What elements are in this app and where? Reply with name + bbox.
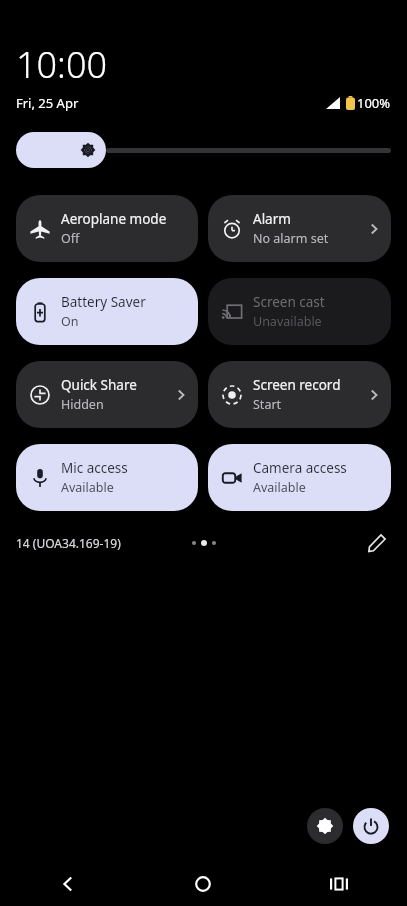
staticText: Unavailable <box>253 313 322 330</box>
staticText: Screen cast <box>253 293 325 311</box>
button[interactable]: Edit tiles <box>363 529 391 557</box>
staticText: Alarm <box>253 210 291 228</box>
staticText: Fri, 25 Apr <box>16 94 79 112</box>
button[interactable]: Camera access <box>208 444 391 511</box>
button[interactable]: Brightness <box>16 130 391 170</box>
staticText: Off <box>61 230 80 247</box>
button[interactable]: Power <box>353 808 389 844</box>
button[interactable]: Screen record <box>208 361 391 428</box>
staticText: Camera access <box>253 459 347 477</box>
staticText: Aeroplane mode <box>61 210 167 228</box>
staticText: Screen record <box>253 376 341 394</box>
staticText: Mic access <box>61 459 128 477</box>
button[interactable]: Mic access <box>16 444 198 511</box>
button[interactable]: Alarm <box>208 195 391 262</box>
button[interactable]: Quick Share <box>16 361 198 428</box>
button[interactable]: Aeroplane mode <box>16 195 198 262</box>
staticText: Start <box>253 396 282 413</box>
staticText: On <box>61 313 79 330</box>
staticText: 10:00 <box>16 40 108 89</box>
button[interactable]: Screen cast <box>208 278 391 345</box>
button[interactable]: Battery Saver <box>16 278 198 345</box>
staticText: 14 (UOA34.169-19) <box>16 535 121 551</box>
button[interactable]: Recents <box>271 862 407 906</box>
staticText: Available <box>253 479 306 496</box>
button[interactable]: Settings <box>307 808 343 844</box>
staticText: Available <box>61 479 114 496</box>
staticText: 100% <box>357 94 391 112</box>
button[interactable]: Back <box>0 862 135 906</box>
button[interactable]: Home <box>135 862 271 906</box>
staticText: Hidden <box>61 396 104 413</box>
staticText: Quick Share <box>61 376 137 394</box>
staticText: Battery Saver <box>61 293 146 311</box>
staticText: No alarm set <box>253 230 329 247</box>
